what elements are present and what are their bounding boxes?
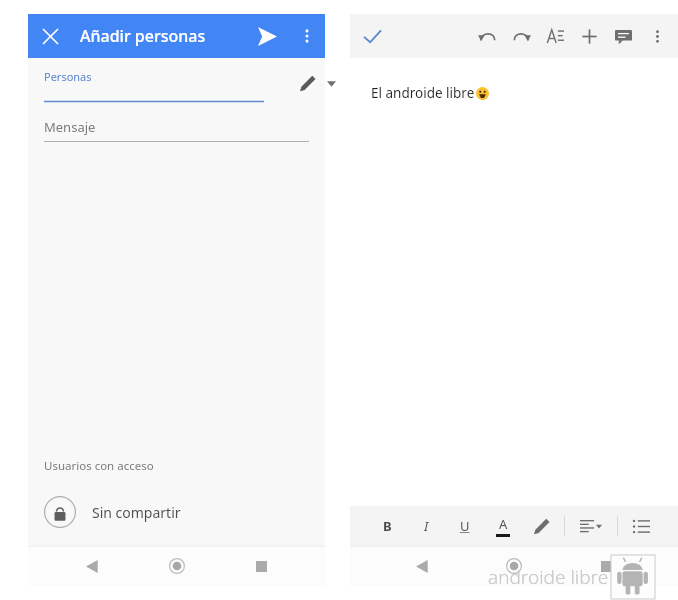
staticText: B xyxy=(383,517,392,535)
staticText: I xyxy=(424,517,429,535)
button[interactable]: Listo xyxy=(350,14,394,58)
button[interactable]: Formato de texto xyxy=(538,19,572,53)
button[interactable]: Más opciones xyxy=(289,18,325,54)
button[interactable]: Alineación xyxy=(573,508,609,544)
button[interactable]: Editar xyxy=(292,68,322,98)
button[interactable]: Recientes xyxy=(586,546,626,586)
button[interactable]: Cerrar xyxy=(28,14,72,58)
button[interactable]: Rehacer xyxy=(504,19,538,53)
button[interactable]: Atrás xyxy=(72,546,112,586)
button[interactable]: Lista con viñetas xyxy=(626,511,656,541)
button[interactable]: Mensaje xyxy=(28,110,325,150)
staticText: androide libre xyxy=(488,564,609,590)
button[interactable]: Inicio xyxy=(157,546,197,586)
button[interactable]: Atrás xyxy=(402,546,442,586)
staticText: U xyxy=(460,517,470,535)
button[interactable]: Enviar xyxy=(245,14,289,58)
button[interactable]: Cursiva xyxy=(411,511,441,541)
staticText: Personas xyxy=(44,69,92,84)
button[interactable]: Subrayado xyxy=(450,511,480,541)
button[interactable]: Comentario xyxy=(606,19,640,53)
button[interactable]: Más opciones xyxy=(640,19,674,53)
staticText: Añadir personas xyxy=(80,25,206,47)
button[interactable]: Sin compartir xyxy=(28,488,325,536)
button[interactable]: Resaltar xyxy=(526,511,556,541)
staticText: El androide libre xyxy=(371,84,475,102)
button[interactable]: Recientes xyxy=(241,546,281,586)
staticText: Mensaje xyxy=(44,118,96,136)
button[interactable]: El androide libre xyxy=(350,58,678,506)
staticText: Sin compartir xyxy=(92,503,181,522)
staticText: A xyxy=(499,515,508,533)
button[interactable]: Deshacer xyxy=(470,19,504,53)
staticText: Usuarios con acceso xyxy=(44,458,154,474)
button[interactable]: Insertar xyxy=(572,19,606,53)
button[interactable]: Color de texto xyxy=(488,511,518,541)
button[interactable]: Desplegar xyxy=(320,72,342,94)
button[interactable]: Negrita xyxy=(372,511,402,541)
button[interactable]: Inicio xyxy=(494,546,534,586)
